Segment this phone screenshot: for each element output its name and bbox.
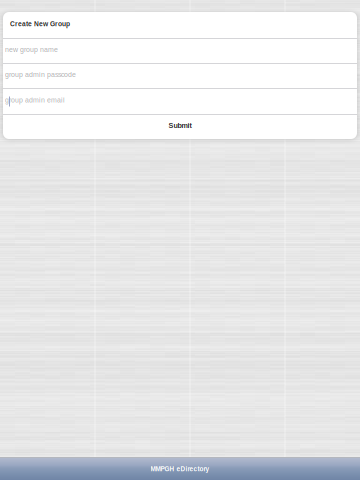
staticText: group admin passcode bbox=[5, 71, 76, 78]
button[interactable]: group admin passcode bbox=[3, 64, 357, 88]
button[interactable]: group admin email bbox=[3, 89, 357, 114]
staticText: Create New Group bbox=[10, 20, 70, 28]
button[interactable]: Submit bbox=[3, 115, 357, 139]
button[interactable]: new group name bbox=[3, 39, 357, 63]
staticText: MMPGH eDirectory bbox=[150, 465, 209, 472]
staticText: Submit bbox=[168, 121, 191, 129]
staticText: group admin email bbox=[5, 96, 65, 104]
staticText: new group name bbox=[5, 46, 58, 53]
